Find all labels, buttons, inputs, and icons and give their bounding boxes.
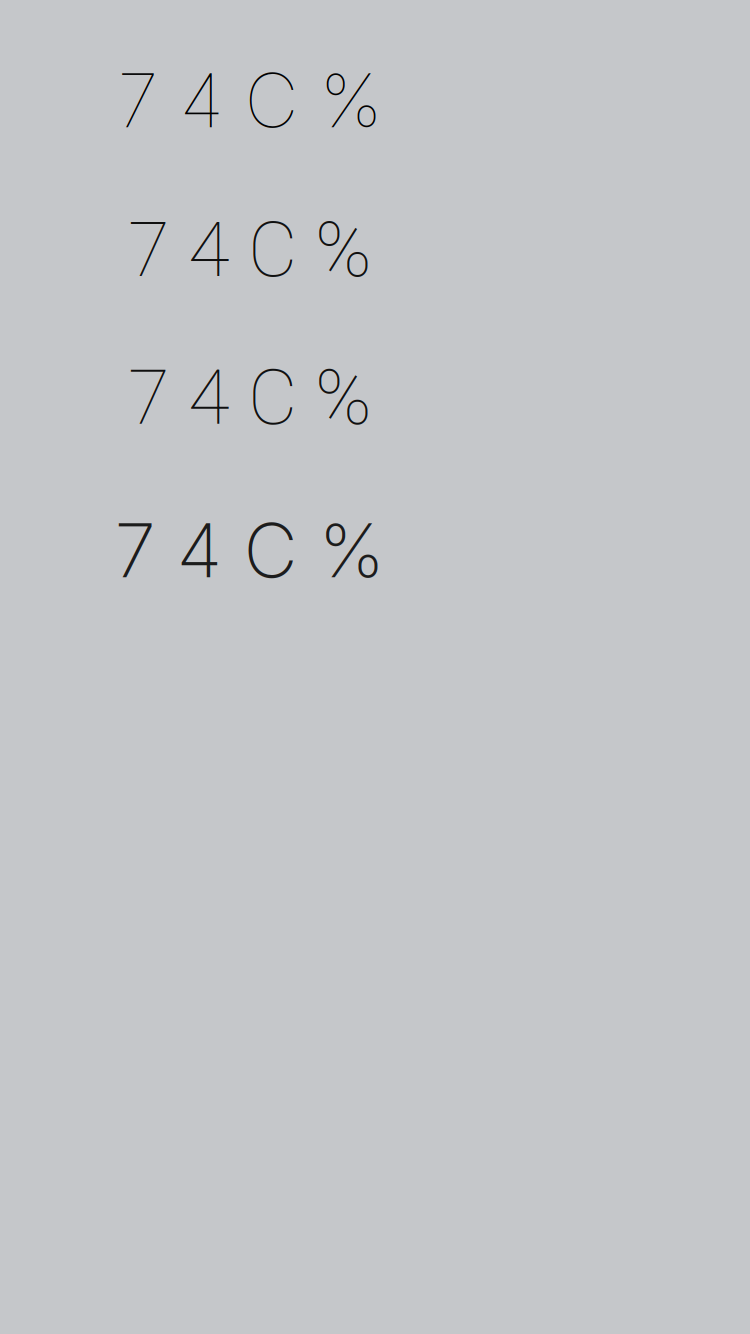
- staticText: 7 4 C %: [128, 344, 372, 456]
- staticText: 7 4 C %: [117, 55, 382, 145]
- staticText: 7 4 C %: [114, 505, 385, 595]
- staticText: 7 4 C %: [128, 205, 372, 295]
